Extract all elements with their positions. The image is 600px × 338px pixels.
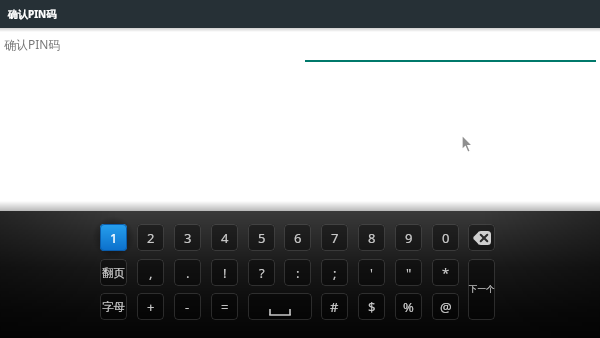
staticText: %	[403, 298, 414, 316]
staticText: +	[147, 298, 155, 316]
button[interactable]: 7	[321, 224, 348, 251]
button[interactable]: '	[358, 259, 385, 286]
staticText: @	[440, 298, 452, 316]
staticText: :	[296, 264, 300, 282]
button[interactable]: 0	[432, 224, 459, 251]
staticText: 翻页	[102, 266, 125, 280]
staticText: 0	[442, 229, 450, 247]
staticText: -	[185, 298, 190, 316]
button[interactable]: 9	[395, 224, 422, 251]
button[interactable]: ;	[321, 259, 348, 286]
button[interactable]: $	[358, 293, 385, 320]
button[interactable]: !	[211, 259, 238, 286]
staticText: 1	[110, 229, 118, 247]
button[interactable]: 1	[100, 224, 127, 251]
button[interactable]	[468, 224, 495, 251]
button[interactable]: :	[284, 259, 311, 286]
button[interactable]: %	[395, 293, 422, 320]
staticText: 3	[184, 229, 192, 247]
button[interactable]: ?	[248, 259, 275, 286]
button[interactable]	[248, 293, 312, 320]
staticText: 2	[147, 229, 155, 247]
button[interactable]: 5	[248, 224, 275, 251]
staticText: *	[442, 264, 450, 282]
button[interactable]: 8	[358, 224, 385, 251]
staticText: 4	[221, 229, 229, 247]
staticText: 下一个	[469, 284, 495, 295]
button[interactable]: ,	[137, 259, 164, 286]
button[interactable]: 4	[211, 224, 238, 251]
button[interactable]: @	[432, 293, 459, 320]
staticText: 字母	[102, 300, 125, 314]
staticText: "	[406, 264, 412, 282]
staticText: ?	[259, 264, 265, 282]
button[interactable]: 3	[174, 224, 201, 251]
staticText: #	[330, 298, 339, 316]
button[interactable]: 2	[137, 224, 164, 251]
button[interactable]: +	[137, 293, 164, 320]
button[interactable]: #	[321, 293, 348, 320]
button[interactable]: 6	[284, 224, 311, 251]
button[interactable]: .	[174, 259, 201, 286]
staticText: 9	[405, 229, 413, 247]
staticText: =	[221, 298, 229, 316]
staticText: ;	[333, 264, 337, 282]
button[interactable]: =	[211, 293, 238, 320]
staticText: 确认PIN码	[8, 7, 57, 21]
staticText: !	[223, 264, 227, 282]
staticText: 6	[294, 229, 302, 247]
button[interactable]: 下一个	[468, 259, 495, 320]
button[interactable]: "	[395, 259, 422, 286]
staticText: $	[368, 298, 376, 316]
staticText: '	[370, 264, 373, 282]
staticText: .	[186, 264, 190, 282]
button[interactable]: *	[432, 259, 459, 286]
staticText: ,	[149, 264, 153, 282]
button[interactable]: 字母	[100, 293, 127, 320]
button[interactable]: 翻页	[100, 259, 127, 286]
staticText: 确认PIN码	[4, 36, 61, 52]
staticText: 7	[331, 229, 339, 247]
staticText: 5	[258, 229, 266, 247]
button[interactable]: -	[174, 293, 201, 320]
staticText: 8	[368, 229, 376, 247]
